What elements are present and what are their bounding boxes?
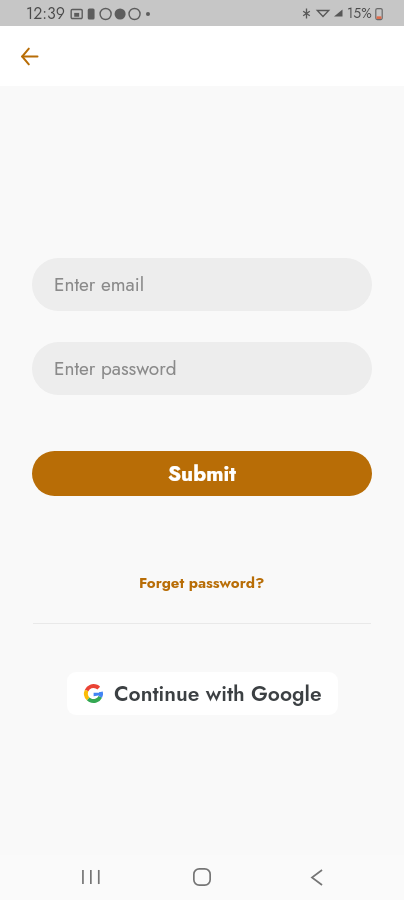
staticText: Continue with Google — [114, 679, 322, 709]
button[interactable]: Continue with Google — [67, 672, 338, 715]
button[interactable]: Back — [295, 856, 339, 900]
button[interactable]: Home — [180, 856, 224, 900]
staticText: Enter email — [54, 271, 145, 298]
button[interactable]: Forget password? — [139, 572, 265, 594]
button[interactable]: Recent apps — [68, 856, 112, 900]
staticText: 12:39 — [26, 2, 66, 25]
button[interactable]: Back — [13, 40, 45, 72]
button[interactable]: Enter password — [32, 342, 372, 395]
button[interactable]: Enter email — [32, 258, 372, 311]
staticText: Enter password — [54, 355, 177, 382]
staticText: 15% — [347, 3, 372, 23]
button[interactable]: Submit — [32, 451, 372, 496]
staticText: Submit — [168, 459, 236, 489]
